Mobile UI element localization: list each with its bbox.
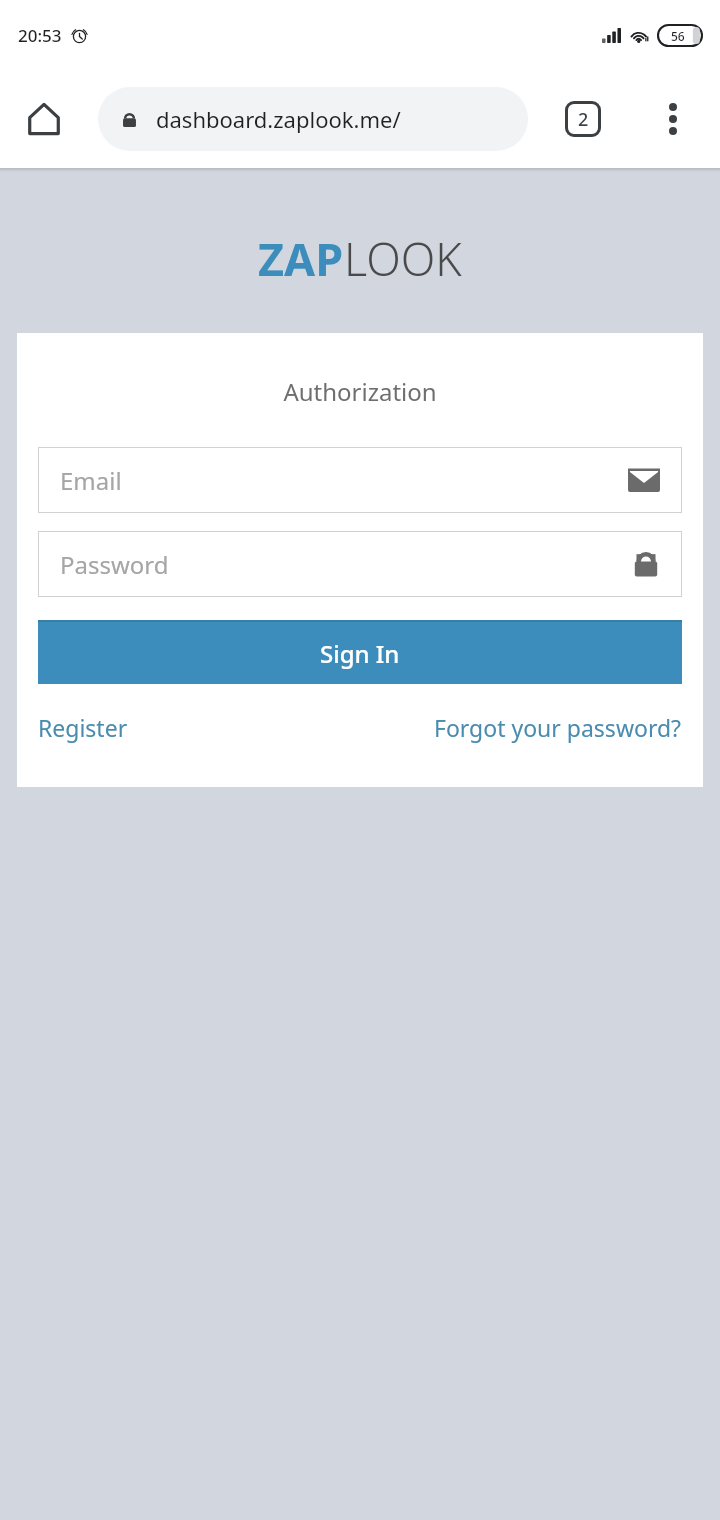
staticText: LOOK [344,228,462,289]
button[interactable]: Home [14,89,74,149]
staticText: Email [60,464,628,497]
button[interactable]: Register [38,712,128,743]
button[interactable]: Tabs, 2 open [554,90,612,148]
staticText: 20:53 [18,24,62,47]
button[interactable]: Email [38,447,682,513]
staticText: Forgot your password? [434,712,682,743]
staticText: ZAP [258,228,344,289]
staticText: Sign In [320,637,400,670]
button[interactable]: Forgot your password? [434,712,682,743]
staticText: 2 [578,107,589,132]
staticText: Password [60,548,632,581]
button[interactable]: More options [644,90,702,148]
staticText: Register [38,712,128,743]
staticText: Authorization [283,375,437,408]
button[interactable]: dashboard.zaplook.me/ [98,87,528,151]
staticText: 56 [671,28,685,44]
button[interactable]: Sign In [38,622,682,684]
staticText: dashboard.zaplook.me/ [156,104,401,134]
button[interactable]: Password [38,531,682,597]
